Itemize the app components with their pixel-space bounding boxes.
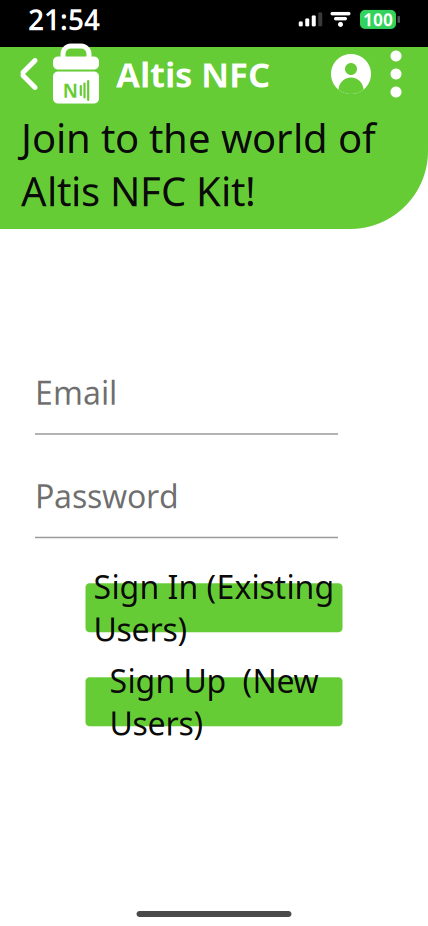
staticText: 21:54 xyxy=(28,1,100,38)
button[interactable]: Email xyxy=(35,375,338,435)
staticText: Altis NFC Kit! xyxy=(21,164,256,217)
staticText: Join to the world of xyxy=(21,111,376,164)
button[interactable]: Sign In (Existing Users) xyxy=(85,583,342,632)
button[interactable]: Back xyxy=(6,47,52,101)
staticText: Sign In (Existing Users) xyxy=(93,565,334,650)
staticText: N xyxy=(63,78,78,103)
staticText: Email xyxy=(35,371,117,413)
button[interactable]: More options xyxy=(376,47,416,101)
staticText: Sign Up (New Users) xyxy=(109,659,318,744)
staticText: 100 xyxy=(363,8,393,31)
staticText: Password xyxy=(35,474,179,517)
button[interactable]: Account xyxy=(326,47,376,101)
button[interactable]: Sign Up (New Users) xyxy=(85,677,342,726)
button[interactable]: N xyxy=(52,47,270,101)
staticText: Altis NFC xyxy=(116,51,270,97)
button[interactable]: Password xyxy=(35,479,338,538)
